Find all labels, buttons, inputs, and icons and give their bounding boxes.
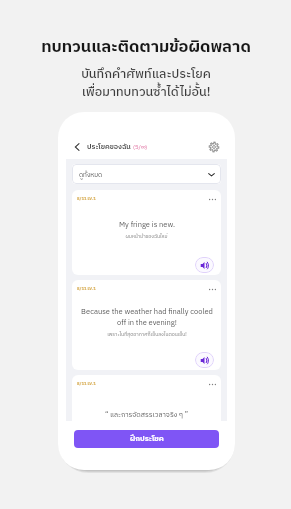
staticText: ฝึกประโยค — [130, 433, 164, 445]
staticText: ดูทั้งหมด — [79, 170, 103, 181]
staticText: (5/∞) — [133, 142, 148, 152]
button[interactable]: Play audio — [195, 257, 214, 273]
staticText: “ และการจัดสรรเวลาจริง ๆ ” — [105, 409, 188, 421]
button[interactable]: 8/11 LV.1 — [72, 190, 221, 275]
staticText: ประโยคของฉัน — [87, 141, 131, 153]
staticText: 8/11 LV.1 — [77, 380, 96, 387]
button[interactable]: 8/11 LV.1 — [72, 280, 221, 370]
button[interactable]: Settings — [207, 141, 220, 154]
button[interactable]: 8/11 LV.1 — [72, 375, 221, 421]
staticText: ผมหน้าม้าของฉันใหม่ — [125, 232, 168, 240]
staticText: เพราะในที่สุดอากาศก็เย็นลงในตอนเย็น! — [107, 330, 187, 338]
staticText: My fringe is new. — [119, 219, 175, 231]
button[interactable]: Play audio — [195, 352, 214, 368]
staticText: 8/11 LV.1 — [77, 195, 96, 202]
staticText: ทบทวนและติดตามข้อผิดพลาด — [41, 34, 251, 61]
button[interactable]: ฝึกประโยค — [74, 430, 219, 448]
button[interactable]: More options — [208, 285, 217, 294]
staticText: 8/11 LV.1 — [77, 285, 96, 292]
button[interactable]: More options — [208, 380, 217, 389]
staticText: บันทึกคำศัพท์และประโยค เพื่อมาทบทวนซ้ำได… — [81, 64, 211, 103]
button[interactable]: ดูทั้งหมด — [72, 164, 221, 184]
button[interactable]: More options — [208, 195, 217, 204]
button[interactable]: Back — [72, 142, 82, 152]
staticText: Because the weather had finally cooled o… — [81, 306, 213, 329]
